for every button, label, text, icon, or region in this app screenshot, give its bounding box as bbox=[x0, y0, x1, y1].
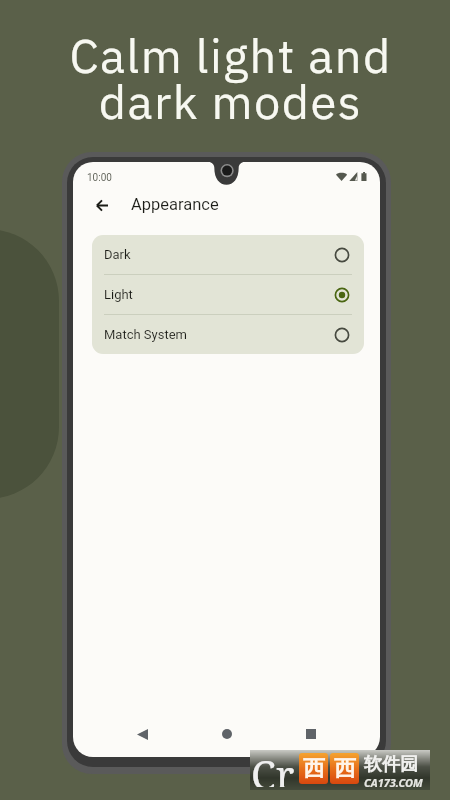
button[interactable]: Back bbox=[127, 719, 157, 749]
button[interactable]: Light bbox=[92, 275, 364, 314]
button[interactable]: Back bbox=[89, 192, 115, 218]
button[interactable]: Dark bbox=[92, 235, 364, 274]
button[interactable]: Home bbox=[212, 719, 242, 749]
staticText: Light bbox=[104, 287, 133, 302]
staticText: 软件园 bbox=[364, 753, 418, 776]
staticText: 西 bbox=[303, 755, 325, 783]
staticText: Appearance bbox=[131, 195, 219, 214]
staticText: 西 bbox=[334, 755, 356, 783]
staticText: Match System bbox=[104, 327, 187, 342]
staticText: Calm light and dark modes bbox=[69, 22, 392, 138]
button[interactable]: Match System bbox=[92, 315, 364, 354]
staticText: CA173.COM bbox=[364, 775, 423, 790]
staticText: Cr bbox=[251, 747, 295, 787]
other: Wi-Fi, signal and battery status bbox=[336, 172, 367, 181]
staticText: 10:00 bbox=[87, 172, 112, 184]
button[interactable]: Recent apps bbox=[296, 719, 326, 749]
staticText: Dark bbox=[104, 247, 131, 262]
